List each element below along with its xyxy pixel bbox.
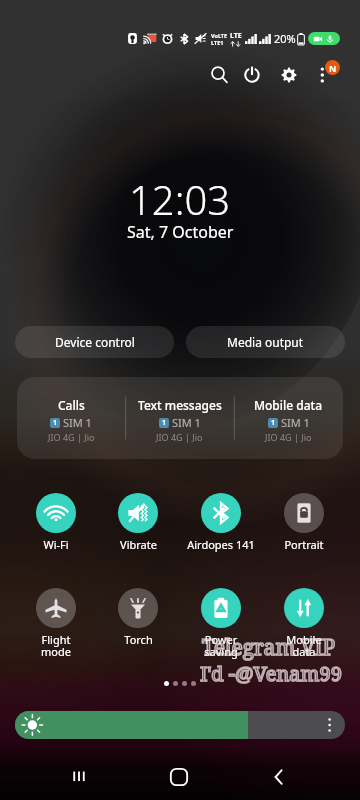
button[interactable]: Text messages bbox=[125, 377, 234, 459]
staticText: Mobile data bbox=[254, 397, 323, 413]
staticText: 1 bbox=[53, 418, 58, 428]
staticText: SIM 1 bbox=[281, 415, 310, 430]
staticText: Flight mode bbox=[41, 632, 71, 659]
staticText: Sat, 7 October bbox=[127, 221, 234, 243]
staticText: Torch bbox=[124, 632, 153, 647]
button[interactable]: Mobile data bbox=[262, 588, 345, 659]
button[interactable]: More options bbox=[310, 61, 338, 89]
button[interactable] bbox=[15, 711, 345, 739]
staticText: SIM 1 bbox=[172, 415, 201, 430]
button[interactable]: Portrait bbox=[262, 493, 345, 552]
staticText: Airdopes 141 bbox=[187, 537, 255, 552]
staticText: 1 bbox=[271, 418, 276, 428]
button[interactable]: Flight mode bbox=[15, 588, 97, 659]
button[interactable]: Settings bbox=[275, 61, 303, 89]
staticText: Media output bbox=[227, 334, 304, 350]
staticText: Device control bbox=[55, 334, 135, 350]
button[interactable]: Wi-Fi bbox=[15, 493, 97, 552]
staticText: LTE1 bbox=[211, 39, 224, 46]
staticText: Mobile data bbox=[286, 632, 322, 659]
button[interactable]: Search bbox=[204, 61, 232, 89]
staticText: LTE bbox=[230, 31, 242, 41]
staticText: 20% bbox=[274, 31, 296, 46]
button[interactable]: Mobile data bbox=[234, 377, 343, 459]
staticText: JIO 4G | Jio bbox=[156, 431, 203, 443]
staticText: Calls bbox=[58, 397, 85, 413]
staticText: Telegram VIP bbox=[202, 633, 336, 662]
button[interactable]: Media output bbox=[186, 326, 345, 358]
button[interactable]: Home bbox=[162, 760, 196, 794]
staticText: 12:03 bbox=[129, 172, 231, 226]
staticText: N bbox=[329, 62, 337, 74]
staticText: JIO 4G | Jio bbox=[265, 431, 312, 443]
staticText: 1 bbox=[162, 418, 167, 428]
button[interactable]: Recents bbox=[62, 760, 96, 794]
staticText: I'd -@Venam99 bbox=[200, 660, 342, 687]
staticText: Power saving bbox=[204, 632, 238, 659]
staticText: VoLTE bbox=[211, 32, 228, 39]
staticText: Portrait bbox=[284, 537, 324, 552]
button[interactable]: Vibrate bbox=[97, 493, 179, 552]
staticText: SIM 1 bbox=[63, 415, 92, 430]
staticText: Wi-Fi bbox=[43, 537, 69, 552]
staticText: Text messages bbox=[138, 397, 222, 413]
button[interactable]: Airdopes 141 bbox=[179, 493, 262, 552]
button[interactable]: Calls bbox=[17, 377, 125, 459]
button[interactable]: Torch bbox=[97, 588, 179, 647]
button[interactable]: Power saving bbox=[179, 588, 262, 659]
button[interactable]: Device control bbox=[15, 326, 174, 358]
staticText: Vibrate bbox=[120, 537, 157, 552]
button[interactable]: Back bbox=[262, 760, 296, 794]
button[interactable]: Power off bbox=[238, 61, 266, 89]
staticText: JIO 4G | Jio bbox=[48, 431, 95, 443]
